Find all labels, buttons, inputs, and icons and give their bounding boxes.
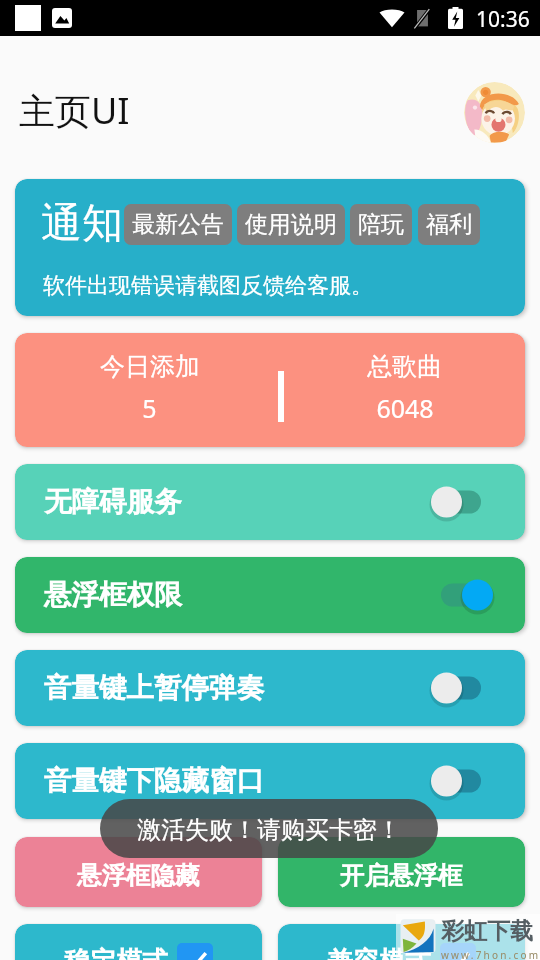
button[interactable]: 最新公告: [124, 204, 232, 245]
staticText: 兼容模式: [327, 945, 431, 960]
button[interactable]: 无障碍服务: [15, 464, 525, 540]
staticText: 今日添加: [100, 351, 200, 382]
staticText: 音量键下隐藏窗口: [44, 764, 429, 799]
staticText: 福利: [426, 210, 472, 239]
staticText: 通知: [41, 198, 123, 250]
staticText: 使用说明: [245, 210, 337, 239]
button[interactable]: Toggle off: [429, 672, 481, 704]
button[interactable]: 悬浮框权限: [15, 557, 525, 633]
button[interactable]: 陪玩: [350, 204, 412, 245]
staticText: 稳定模式: [64, 945, 168, 960]
button[interactable]: 今日添加: [15, 333, 525, 447]
staticText: 主页UI: [19, 86, 130, 135]
staticText: 音量键上暂停弹奏: [44, 671, 429, 706]
staticText: 软件出现错误请截图反馈给客服。: [43, 272, 373, 300]
button[interactable]: 稳定模式: [15, 924, 262, 960]
staticText: 总歌曲: [367, 351, 442, 382]
staticText: www.7hon.com: [441, 948, 540, 960]
staticText: 5: [142, 391, 157, 425]
button[interactable]: 开启悬浮框: [278, 837, 525, 907]
button[interactable]: 音量键下隐藏窗口: [15, 743, 525, 819]
staticText: 无障碍服务: [44, 485, 429, 520]
button[interactable]: Toggle off: [429, 486, 481, 518]
staticText: 陪玩: [358, 210, 404, 239]
staticText: 最新公告: [132, 210, 224, 239]
button[interactable]: 音量键上暂停弹奏: [15, 650, 525, 726]
staticText: 彩虹下载: [441, 917, 533, 946]
staticText: 开启悬浮框: [340, 860, 463, 891]
staticText: 悬浮框权限: [44, 578, 429, 613]
button[interactable]: 使用说明: [237, 204, 345, 245]
staticText: 6048: [376, 391, 434, 425]
button[interactable]: Toggle on: [441, 579, 493, 611]
button[interactable]: 通知: [15, 179, 525, 316]
staticText: 悬浮框隐藏: [77, 860, 200, 891]
staticText: 激活失败！请购买卡密！: [137, 815, 401, 845]
button[interactable]: 兼容模式: [278, 924, 525, 960]
button[interactable]: 悬浮框隐藏: [15, 837, 262, 907]
staticText: 10:36: [476, 5, 530, 34]
button[interactable]: 福利: [418, 204, 480, 245]
button[interactable]: Profile: [464, 82, 525, 143]
button[interactable]: Toggle off: [429, 765, 481, 797]
